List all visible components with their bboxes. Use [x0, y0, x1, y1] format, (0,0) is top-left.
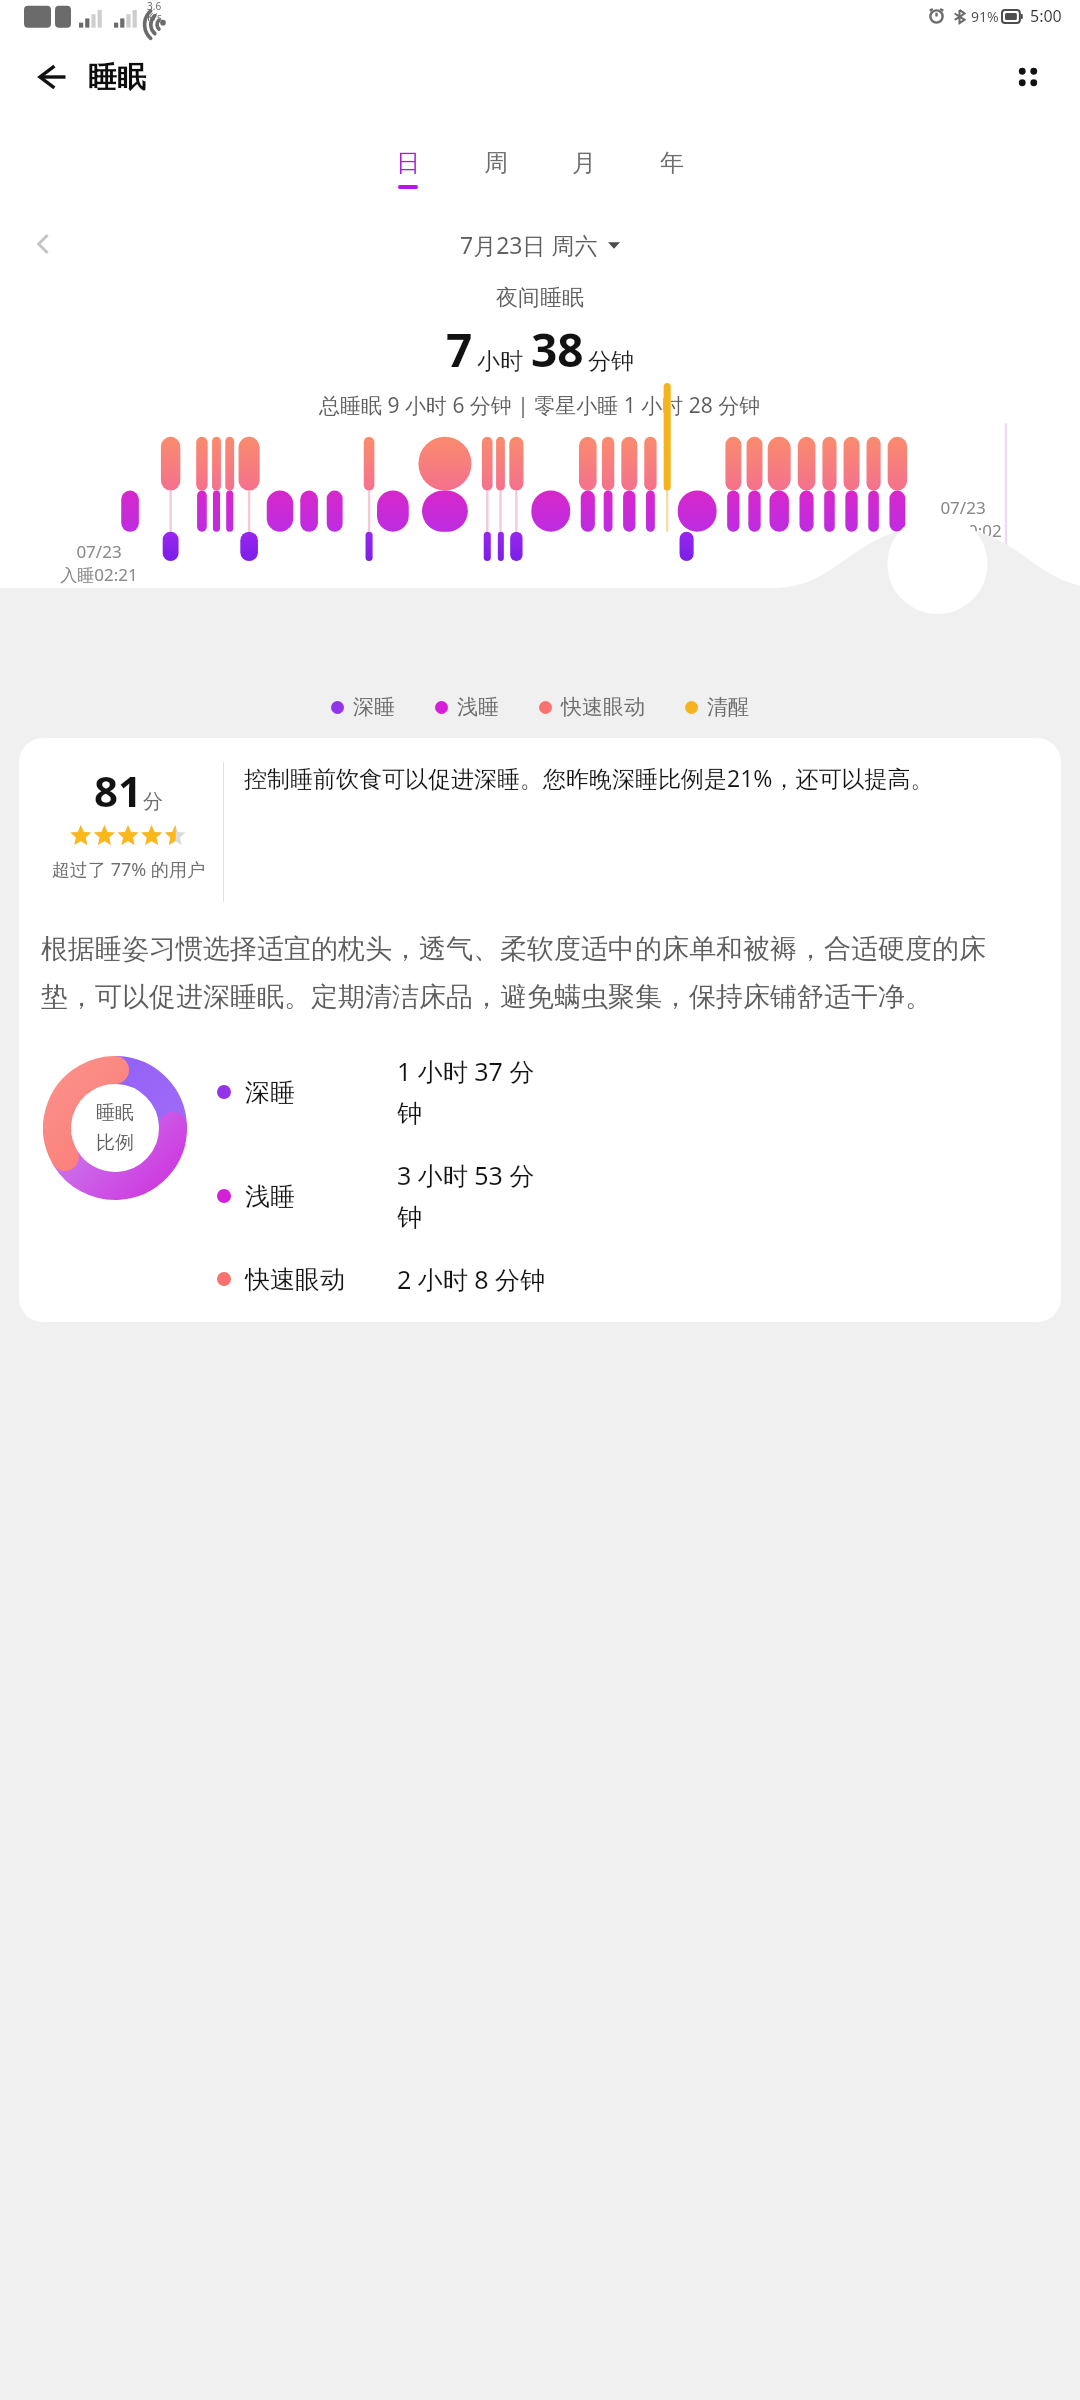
staticText: 91% — [971, 7, 999, 26]
button[interactable]: 周 — [452, 122, 540, 214]
staticText: 1 小时 37 分 钟 — [397, 1054, 535, 1130]
staticText: 浅睡 — [457, 694, 499, 720]
staticText: 控制睡前饮食可以促进深睡。您昨晚深睡比例是21%，还可以提高。 — [244, 762, 934, 793]
staticText: 81 — [94, 762, 143, 819]
staticText: 快速眼动 — [245, 1264, 397, 1295]
staticText: 根据睡姿习惯选择适宜的枕头，透气、柔软度适中的床单和被褥，合适硬度的床垫，可以促… — [41, 932, 1039, 1014]
staticText: 38 — [531, 318, 584, 381]
button[interactable]: 日 — [364, 122, 452, 214]
staticText: 3.6 K/s — [147, 0, 162, 24]
staticText: 小时 — [477, 347, 523, 376]
staticText: 7月23日 周六 — [460, 229, 598, 260]
staticText: 深睡 — [353, 694, 395, 720]
staticText: 夜间睡眠 — [496, 284, 584, 312]
button[interactable]: 快速眼动 — [217, 1262, 1051, 1296]
staticText: 日 — [396, 148, 420, 178]
staticText: 分 — [143, 789, 163, 814]
button[interactable]: 清醒 — [685, 694, 749, 720]
staticText: 清醒 — [707, 694, 749, 720]
button[interactable]: 深睡 — [331, 694, 395, 720]
staticText: 3 小时 53 分 钟 — [397, 1158, 535, 1234]
button[interactable]: 81 — [19, 738, 1061, 1322]
button[interactable]: 月 — [540, 122, 628, 214]
button[interactable]: Back — [24, 49, 80, 105]
button[interactable]: 浅睡 — [435, 694, 499, 720]
button[interactable]: 浅睡 — [217, 1158, 1051, 1234]
staticText: 总睡眠 9 小时 6 分钟 | 零星小睡 1 小时 28 分钟 — [319, 391, 761, 420]
staticText: 睡眠 比例 — [96, 1101, 134, 1155]
button[interactable]: 年 — [628, 122, 716, 214]
staticText: 7 — [446, 318, 473, 381]
staticText: 超过了 77% 的用户 — [52, 857, 205, 882]
staticText: 睡眠 — [88, 59, 146, 96]
staticText: 年 — [660, 148, 684, 178]
staticText: 月 — [572, 148, 596, 178]
staticText: 浅睡 — [245, 1181, 397, 1212]
staticText: 2 小时 8 分钟 — [397, 1262, 546, 1296]
button[interactable]: 7月23日 周六 — [460, 229, 620, 260]
button[interactable]: More options — [1000, 49, 1056, 105]
staticText: 07/23 入睡02:21 — [60, 540, 138, 586]
button[interactable]: Previous day — [18, 218, 70, 270]
staticText: 5:00 — [1030, 5, 1062, 27]
button[interactable]: 深睡 — [217, 1054, 1051, 1130]
staticText: 分钟 — [588, 347, 634, 376]
staticText: 快速眼动 — [561, 694, 645, 720]
button[interactable]: 快速眼动 — [539, 694, 645, 720]
staticText: 07/23 醒来10:02 — [924, 496, 1002, 542]
staticText: 深睡 — [245, 1077, 397, 1108]
staticText: 周 — [484, 148, 508, 178]
